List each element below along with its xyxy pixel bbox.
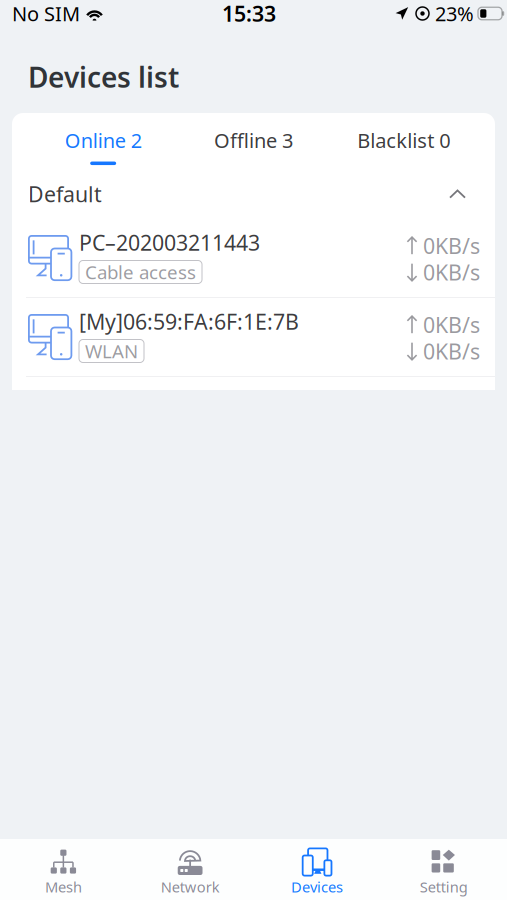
staticText: 0KB/s bbox=[423, 258, 480, 286]
staticText: 15:33 bbox=[222, 0, 276, 28]
button[interactable]: PC–202003211443 bbox=[12, 219, 495, 297]
staticText: Devices bbox=[291, 877, 343, 896]
button[interactable]: [My]06:59:FA:6F:1E:7B bbox=[12, 298, 495, 376]
staticText: No SIM bbox=[12, 0, 80, 27]
button[interactable]: Mesh bbox=[0, 839, 127, 900]
staticText: Cable access bbox=[85, 260, 196, 284]
button[interactable]: Blacklist 0 bbox=[329, 113, 479, 175]
staticText: Network bbox=[161, 877, 220, 896]
staticText: Setting bbox=[420, 877, 468, 896]
button[interactable]: Offline 3 bbox=[178, 113, 329, 175]
staticText: Mesh bbox=[45, 877, 82, 896]
button[interactable]: Network bbox=[127, 839, 254, 900]
staticText: Online 2 bbox=[65, 127, 142, 154]
staticText: [My]06:59:FA:6F:1E:7B bbox=[79, 307, 299, 336]
button[interactable]: Devices bbox=[253, 839, 380, 900]
staticText: PC–202003211443 bbox=[79, 228, 260, 257]
button[interactable]: Online 2 bbox=[28, 113, 178, 175]
staticText: 0KB/s bbox=[423, 310, 480, 339]
staticText: Blacklist 0 bbox=[357, 127, 450, 154]
button[interactable]: Default bbox=[12, 175, 495, 219]
staticText: Devices list bbox=[28, 58, 179, 96]
staticText: WLAN bbox=[85, 339, 138, 363]
button[interactable]: Setting bbox=[380, 839, 507, 900]
staticText: Offline 3 bbox=[214, 127, 293, 154]
staticText: 0KB/s bbox=[423, 231, 480, 260]
staticText: Default bbox=[28, 180, 102, 208]
staticText: 0KB/s bbox=[423, 337, 480, 365]
staticText: 23% bbox=[435, 0, 474, 27]
